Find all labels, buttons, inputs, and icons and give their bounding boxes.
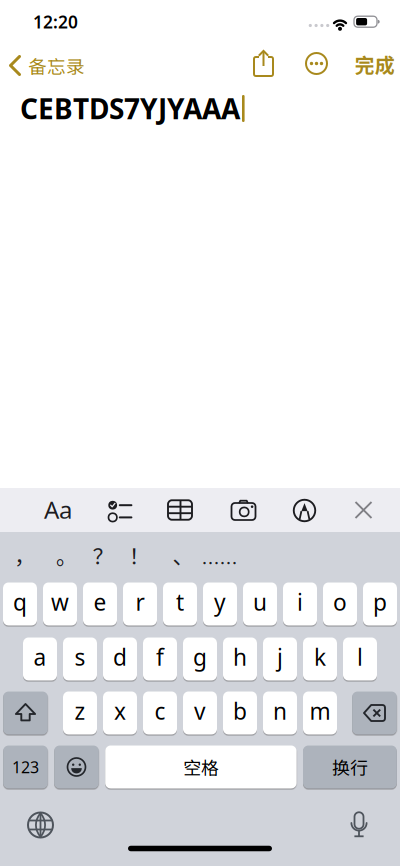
button[interactable]: d xyxy=(103,637,137,680)
button[interactable]: Shift xyxy=(3,691,48,734)
button[interactable]: u xyxy=(243,582,277,625)
button[interactable]: 标记 xyxy=(292,498,316,522)
staticText: y xyxy=(214,587,226,617)
staticText: 123 xyxy=(12,756,39,778)
staticText: o xyxy=(333,587,347,617)
staticText: s xyxy=(74,642,85,672)
staticText: p xyxy=(373,587,387,617)
staticText: u xyxy=(253,587,267,617)
button[interactable]: o xyxy=(323,582,357,625)
staticText: 、 xyxy=(172,540,193,570)
staticText: i xyxy=(297,587,303,617)
staticText: 空格 xyxy=(183,754,219,780)
button[interactable]: 删除 xyxy=(352,691,397,734)
staticText: c xyxy=(154,696,165,726)
staticText: 换行 xyxy=(332,754,368,780)
staticText: r xyxy=(135,587,144,617)
staticText: …… xyxy=(201,549,237,575)
button[interactable]: g xyxy=(183,637,217,680)
button[interactable]: t xyxy=(163,582,197,625)
button[interactable]: …… xyxy=(201,542,237,582)
button[interactable]: i xyxy=(283,582,317,625)
button[interactable]: ， xyxy=(7,535,43,575)
staticText: g xyxy=(193,642,207,672)
staticText: a xyxy=(33,642,46,672)
button[interactable]: v xyxy=(183,691,217,734)
button[interactable]: 空格 xyxy=(105,745,297,788)
staticText: w xyxy=(51,587,69,617)
staticText: 备忘录 xyxy=(28,52,85,79)
button[interactable]: f xyxy=(143,637,177,680)
staticText: k xyxy=(314,642,326,672)
staticText: CEBTDS7YJYAAA xyxy=(20,90,240,127)
button[interactable]: 更多 xyxy=(304,51,328,75)
staticText: ， xyxy=(14,540,35,570)
button[interactable]: x xyxy=(103,691,137,734)
button[interactable]: 换行 xyxy=(303,745,397,788)
button[interactable]: q xyxy=(3,582,37,625)
staticText: Aa xyxy=(44,494,72,525)
button[interactable]: n xyxy=(263,691,297,734)
button[interactable]: 下一个输入法 xyxy=(27,811,54,838)
staticText: z xyxy=(74,696,85,726)
staticText: 。 xyxy=(56,540,77,570)
button[interactable]: z xyxy=(63,691,97,734)
button[interactable]: ！ xyxy=(121,535,157,575)
button[interactable]: 、 xyxy=(165,535,201,575)
staticText: l xyxy=(357,642,363,672)
button[interactable]: r xyxy=(123,582,157,625)
button[interactable]: m xyxy=(303,691,337,734)
button[interactable]: a xyxy=(23,637,57,680)
button[interactable]: 听写 xyxy=(350,811,368,839)
button[interactable]: 表格 xyxy=(166,498,194,522)
button[interactable]: 。 xyxy=(49,535,85,575)
staticText: n xyxy=(273,696,287,726)
button[interactable]: ？ xyxy=(85,535,121,575)
staticText: 完成 xyxy=(354,49,394,78)
button[interactable]: b xyxy=(223,691,257,734)
button[interactable]: e xyxy=(83,582,117,625)
button[interactable]: h xyxy=(223,637,257,680)
button[interactable]: 核对清单 xyxy=(105,496,135,524)
button[interactable]: 表情符号 xyxy=(54,745,99,788)
button[interactable]: j xyxy=(263,637,297,680)
button[interactable]: c xyxy=(143,691,177,734)
staticText: 12:20 xyxy=(33,10,78,33)
button[interactable]: p xyxy=(363,582,397,625)
staticText: m xyxy=(309,696,330,726)
button[interactable]: 备忘录 xyxy=(9,47,119,83)
staticText: q xyxy=(13,587,27,617)
button[interactable]: 123 xyxy=(3,745,48,788)
staticText: d xyxy=(113,642,127,672)
staticText: e xyxy=(93,587,106,617)
button[interactable]: k xyxy=(303,637,337,680)
button[interactable]: 分享 xyxy=(250,49,276,77)
staticText: h xyxy=(233,642,247,672)
button[interactable]: y xyxy=(203,582,237,625)
staticText: ！ xyxy=(129,540,150,570)
staticText: x xyxy=(114,696,126,726)
button[interactable]: 关闭 xyxy=(353,500,373,520)
button[interactable]: s xyxy=(63,637,97,680)
button[interactable]: 格式 xyxy=(33,489,83,529)
staticText: v xyxy=(194,696,206,726)
button[interactable]: w xyxy=(43,582,77,625)
staticText: t xyxy=(176,587,184,617)
staticText: f xyxy=(156,642,164,672)
staticText: ？ xyxy=(93,540,114,570)
staticText: b xyxy=(233,696,247,726)
button[interactable]: 照片 xyxy=(229,498,257,522)
button[interactable]: 完成 xyxy=(354,49,394,78)
staticText: j xyxy=(277,642,283,672)
button[interactable]: l xyxy=(343,637,377,680)
